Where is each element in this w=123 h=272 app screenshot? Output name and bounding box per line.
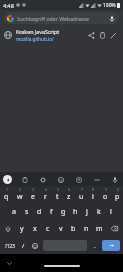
staticText: g (61, 207, 66, 217)
button[interactable]: 5 (51, 186, 63, 203)
staticText: Kraken JavaScript Benchm... (16, 28, 84, 35)
button[interactable]: Translate (73, 174, 84, 185)
button[interactable]: j (81, 203, 93, 220)
button[interactable]: 4 (39, 186, 51, 203)
button[interactable]: Kraken JavaScript Benchm... (0, 26, 123, 44)
staticText: 0 (117, 187, 119, 192)
button[interactable]: Voice search (107, 14, 116, 23)
staticText: h (73, 207, 78, 217)
button[interactable]: Settings (37, 174, 48, 185)
button[interactable]: 2 (13, 186, 26, 203)
button[interactable]: n (80, 220, 93, 237)
staticText: a (12, 207, 16, 217)
staticText: m (96, 224, 103, 234)
staticText: 7 (81, 187, 83, 192)
staticText: 2 (19, 187, 21, 192)
staticText: p (115, 192, 120, 202)
staticText: y (20, 224, 24, 234)
button[interactable]: Emoji (55, 174, 66, 185)
button[interactable]: Edit (108, 30, 119, 41)
button[interactable]: l (105, 203, 117, 220)
staticText: 3 (32, 187, 34, 192)
button[interactable]: More (91, 174, 102, 185)
button[interactable]: b (67, 220, 80, 237)
button[interactable]: Backspace (106, 220, 123, 237)
button[interactable]: 1 (0, 186, 13, 203)
button[interactable]: Expand toolbar (3, 175, 12, 184)
button[interactable]: s (20, 203, 33, 220)
button[interactable]: v (54, 220, 67, 237)
button[interactable]: m (93, 220, 106, 237)
staticText: x (33, 224, 37, 234)
button[interactable]: / (17, 239, 29, 252)
button[interactable]: 8 (87, 186, 99, 203)
staticText: 4:48 (3, 2, 14, 9)
button[interactable]: c (41, 220, 54, 237)
button[interactable]: Shift (0, 220, 16, 237)
button[interactable]: Clipboard (19, 174, 30, 185)
staticText: 6 (68, 187, 70, 192)
staticText: v (59, 224, 63, 234)
button[interactable]: Copy (97, 30, 108, 41)
staticText: k (97, 207, 101, 217)
button[interactable]: 9 (99, 186, 111, 203)
staticText: ?123 (5, 243, 15, 249)
button[interactable]: 7 (75, 186, 87, 203)
staticText: Suchbegriff oder Webadresse eingeben (17, 15, 105, 22)
staticText: j (86, 207, 88, 217)
staticText: i (92, 192, 94, 202)
staticText: r (44, 192, 47, 202)
button[interactable]: k (93, 203, 105, 220)
staticText: b (71, 224, 76, 234)
staticText: 8 (92, 187, 94, 192)
button[interactable]: x (28, 220, 41, 237)
staticText: q (4, 192, 9, 202)
staticText: z (67, 192, 71, 202)
button[interactable]: Hide keyboard (4, 258, 15, 269)
button[interactable]: 6 (63, 186, 75, 203)
button[interactable]: d (33, 203, 45, 220)
button[interactable]: y (16, 220, 28, 237)
staticText: c (46, 224, 50, 234)
button[interactable]: Voice input (109, 174, 120, 185)
staticText: l (110, 207, 112, 217)
button[interactable]: 3 (26, 186, 39, 203)
button[interactable]: Suchbegriff oder Webadresse eingeben (4, 12, 119, 24)
button[interactable]: Enter (102, 240, 120, 251)
button[interactable]: a (7, 203, 20, 220)
staticText: mozilla.github.io/krakenbench... (16, 36, 84, 42)
staticText: s (25, 207, 29, 217)
staticText: 5 (57, 187, 59, 192)
staticText: w (17, 192, 23, 202)
staticText: t (56, 192, 59, 202)
staticText: o (103, 192, 108, 202)
button[interactable]: Share (86, 30, 97, 41)
staticText: f (50, 207, 53, 217)
button[interactable]: Emoji (29, 239, 41, 252)
staticText: u (79, 192, 84, 202)
button[interactable]: h (69, 203, 81, 220)
staticText: n (84, 224, 89, 234)
button[interactable]: 0 (111, 186, 123, 203)
staticText: d (37, 207, 42, 217)
staticText: / (22, 242, 25, 250)
staticText: 1 (6, 187, 8, 192)
staticText: e (31, 192, 35, 202)
staticText: 4 (45, 187, 47, 192)
button[interactable]: ?123 (2, 239, 17, 252)
staticText: 9 (105, 187, 107, 192)
staticText: 100% (103, 2, 116, 9)
button[interactable]: g (57, 203, 69, 220)
staticText: . (94, 242, 96, 250)
button[interactable]: f (45, 203, 57, 220)
button[interactable]: . (89, 239, 101, 252)
